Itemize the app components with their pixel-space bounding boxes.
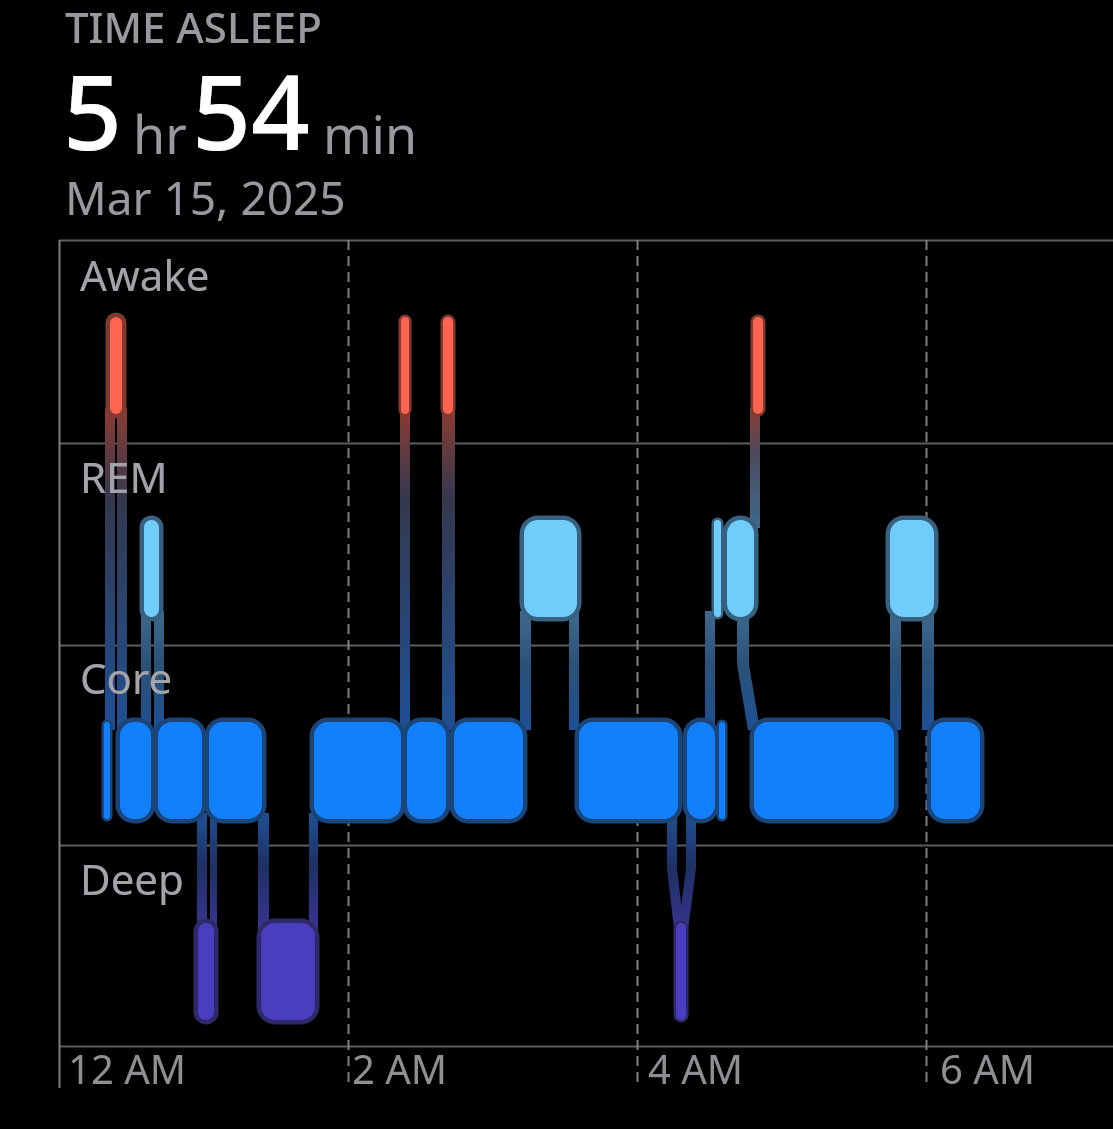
staticText: Deep	[80, 850, 184, 907]
staticText: 4 AM	[648, 1041, 744, 1095]
staticText: Mar 15, 2025	[65, 166, 346, 229]
staticText: min	[323, 98, 418, 169]
staticText: Core	[80, 649, 173, 706]
staticText: Awake	[80, 246, 210, 303]
staticText: REM	[80, 448, 168, 505]
staticText: 54	[192, 40, 310, 180]
staticText: 12 AM	[68, 1041, 186, 1095]
staticText: hr	[133, 98, 187, 169]
staticText: TIME ASLEEP	[65, 0, 322, 55]
staticText: 5	[63, 40, 122, 180]
staticText: 6 AM	[940, 1041, 1036, 1095]
staticText: 2 AM	[352, 1041, 448, 1095]
